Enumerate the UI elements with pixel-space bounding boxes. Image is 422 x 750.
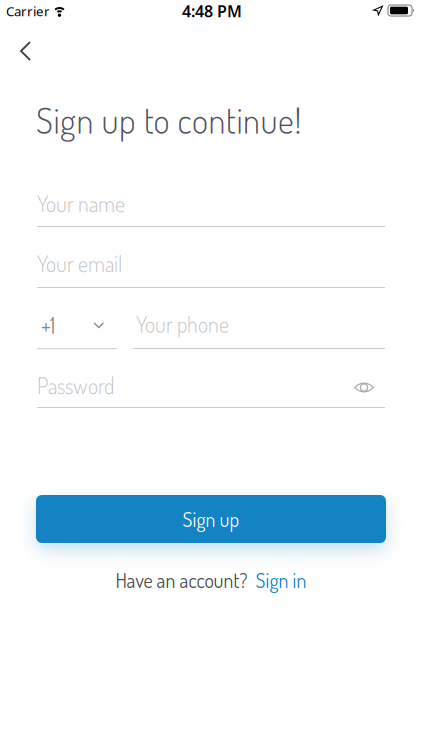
staticText: Sign up xyxy=(182,506,239,532)
staticText: Have an account? xyxy=(115,567,247,593)
staticText: Your phone xyxy=(136,310,229,338)
staticText: Carrier xyxy=(6,2,50,20)
staticText: Sign up to continue! xyxy=(36,98,301,142)
staticText: Password xyxy=(37,372,114,399)
button[interactable]: Sign up xyxy=(36,495,386,543)
staticText: Your name xyxy=(37,190,125,217)
staticText: 4:48 PM xyxy=(182,0,242,22)
button[interactable]: Back xyxy=(4,31,48,71)
button[interactable]: Sign in xyxy=(255,567,306,593)
button[interactable]: Country code +1 xyxy=(37,304,133,350)
button[interactable]: Show password xyxy=(349,374,379,400)
staticText: +1 xyxy=(41,311,55,339)
staticText: Your email xyxy=(37,250,122,277)
staticText: Sign in xyxy=(255,567,306,593)
